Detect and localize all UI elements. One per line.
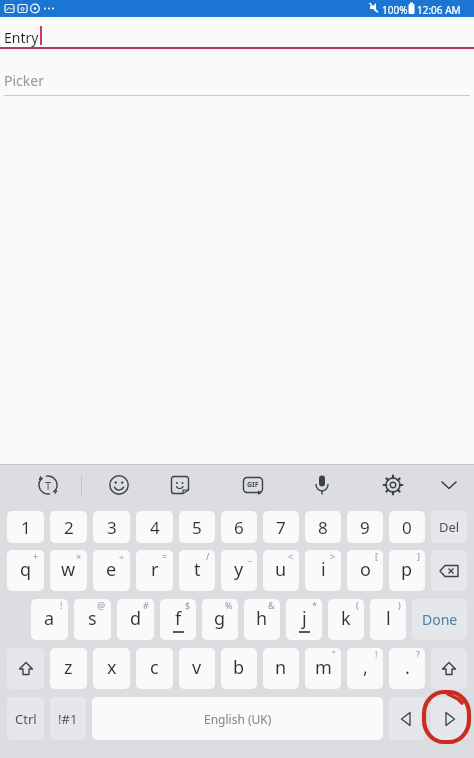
staticText: e <box>106 557 117 582</box>
button[interactable] <box>431 697 467 740</box>
staticText: & <box>268 599 275 611</box>
button[interactable]: 2 <box>50 511 87 543</box>
button[interactable] <box>378 470 408 500</box>
staticText: # <box>143 599 149 611</box>
button[interactable]: x <box>93 648 130 689</box>
button[interactable]: h <box>244 599 280 640</box>
button[interactable]: s <box>74 599 111 640</box>
button[interactable]: u <box>263 550 299 591</box>
button[interactable]: c <box>136 648 173 689</box>
button[interactable]: 0 <box>389 511 425 543</box>
button[interactable]: 3 <box>93 511 130 543</box>
button[interactable] <box>434 470 464 500</box>
button[interactable]: l <box>370 599 406 640</box>
staticText: o <box>360 557 371 582</box>
staticText: < <box>288 550 294 562</box>
button[interactable] <box>431 648 467 689</box>
staticText: g <box>214 606 226 631</box>
button[interactable] <box>307 470 337 500</box>
staticText: = <box>162 550 168 562</box>
staticText: / <box>206 550 210 562</box>
staticText: s <box>88 606 97 631</box>
staticText: Entry <box>4 28 39 47</box>
button[interactable]: b <box>221 648 257 689</box>
button[interactable]: 6 <box>221 511 257 543</box>
button[interactable] <box>165 470 195 500</box>
button[interactable]: 9 <box>347 511 383 543</box>
button[interactable]: 8 <box>305 511 341 543</box>
button[interactable]: GIF <box>238 470 268 500</box>
staticText: % <box>225 599 233 611</box>
button[interactable]: z <box>50 648 87 689</box>
staticText: c <box>150 655 159 680</box>
button[interactable]: 4 <box>136 511 173 543</box>
button[interactable]: p <box>389 550 425 591</box>
button[interactable] <box>431 550 467 591</box>
staticText: English (UK) <box>204 711 272 727</box>
button[interactable]: , <box>347 648 383 689</box>
staticText: 2 <box>64 516 74 539</box>
button[interactable]: m <box>305 648 341 689</box>
staticText: [ <box>375 550 378 562</box>
button[interactable]: d <box>117 599 154 640</box>
button[interactable]: y <box>221 550 257 591</box>
staticText: v <box>192 655 202 680</box>
staticText: ? <box>416 648 420 660</box>
staticText: b <box>233 655 245 680</box>
staticText: 100% <box>382 3 408 17</box>
staticText: u <box>275 557 287 582</box>
button[interactable]: 5 <box>179 511 215 543</box>
button[interactable]: n <box>263 648 299 689</box>
button[interactable]: Del <box>431 511 467 543</box>
button[interactable]: 7 <box>263 511 299 543</box>
staticText: T <box>45 478 52 493</box>
staticText: ( <box>356 599 359 611</box>
button[interactable]: j <box>286 599 322 640</box>
button[interactable]: Ctrl <box>7 697 44 740</box>
button[interactable]: g <box>202 599 238 640</box>
staticText: Done <box>422 610 458 629</box>
staticText: r <box>151 557 159 582</box>
staticText: z <box>64 655 73 680</box>
staticText: t <box>194 557 201 582</box>
button[interactable] <box>389 697 425 740</box>
staticText: p <box>401 557 413 582</box>
button[interactable]: . <box>389 648 425 689</box>
staticText: !#1 <box>58 710 78 728</box>
button[interactable]: v <box>179 648 215 689</box>
staticText: _ <box>248 550 252 562</box>
button[interactable]: q <box>7 550 44 591</box>
button[interactable]: i <box>305 550 341 591</box>
button[interactable]: a <box>31 599 68 640</box>
staticText: w <box>61 557 76 582</box>
button[interactable]: o <box>347 550 383 591</box>
button[interactable]: t <box>179 550 215 591</box>
button[interactable]: !#1 <box>50 697 86 740</box>
staticText: > <box>330 550 336 562</box>
button[interactable]: English (UK) <box>92 697 383 740</box>
button[interactable] <box>7 648 44 689</box>
button[interactable]: e <box>93 550 130 591</box>
button[interactable]: T <box>33 470 63 500</box>
button[interactable] <box>104 470 134 500</box>
staticText: 3 <box>107 516 117 539</box>
staticText: i <box>321 557 326 582</box>
button[interactable]: 1 <box>7 511 44 543</box>
staticText: Picker <box>4 71 44 90</box>
staticText: + <box>33 550 39 562</box>
button[interactable]: w <box>50 550 87 591</box>
staticText: y <box>234 557 244 582</box>
staticText: ] <box>417 550 420 562</box>
button[interactable]: r <box>136 550 173 591</box>
button[interactable]: Done <box>412 599 467 640</box>
button[interactable]: f <box>160 599 196 640</box>
staticText: 6 <box>234 516 244 539</box>
staticText: Del <box>439 518 460 536</box>
staticText: a <box>44 606 55 631</box>
staticText: 5 <box>192 516 202 539</box>
staticText: f <box>175 606 182 631</box>
staticText: m <box>315 655 332 680</box>
button[interactable]: k <box>328 599 364 640</box>
